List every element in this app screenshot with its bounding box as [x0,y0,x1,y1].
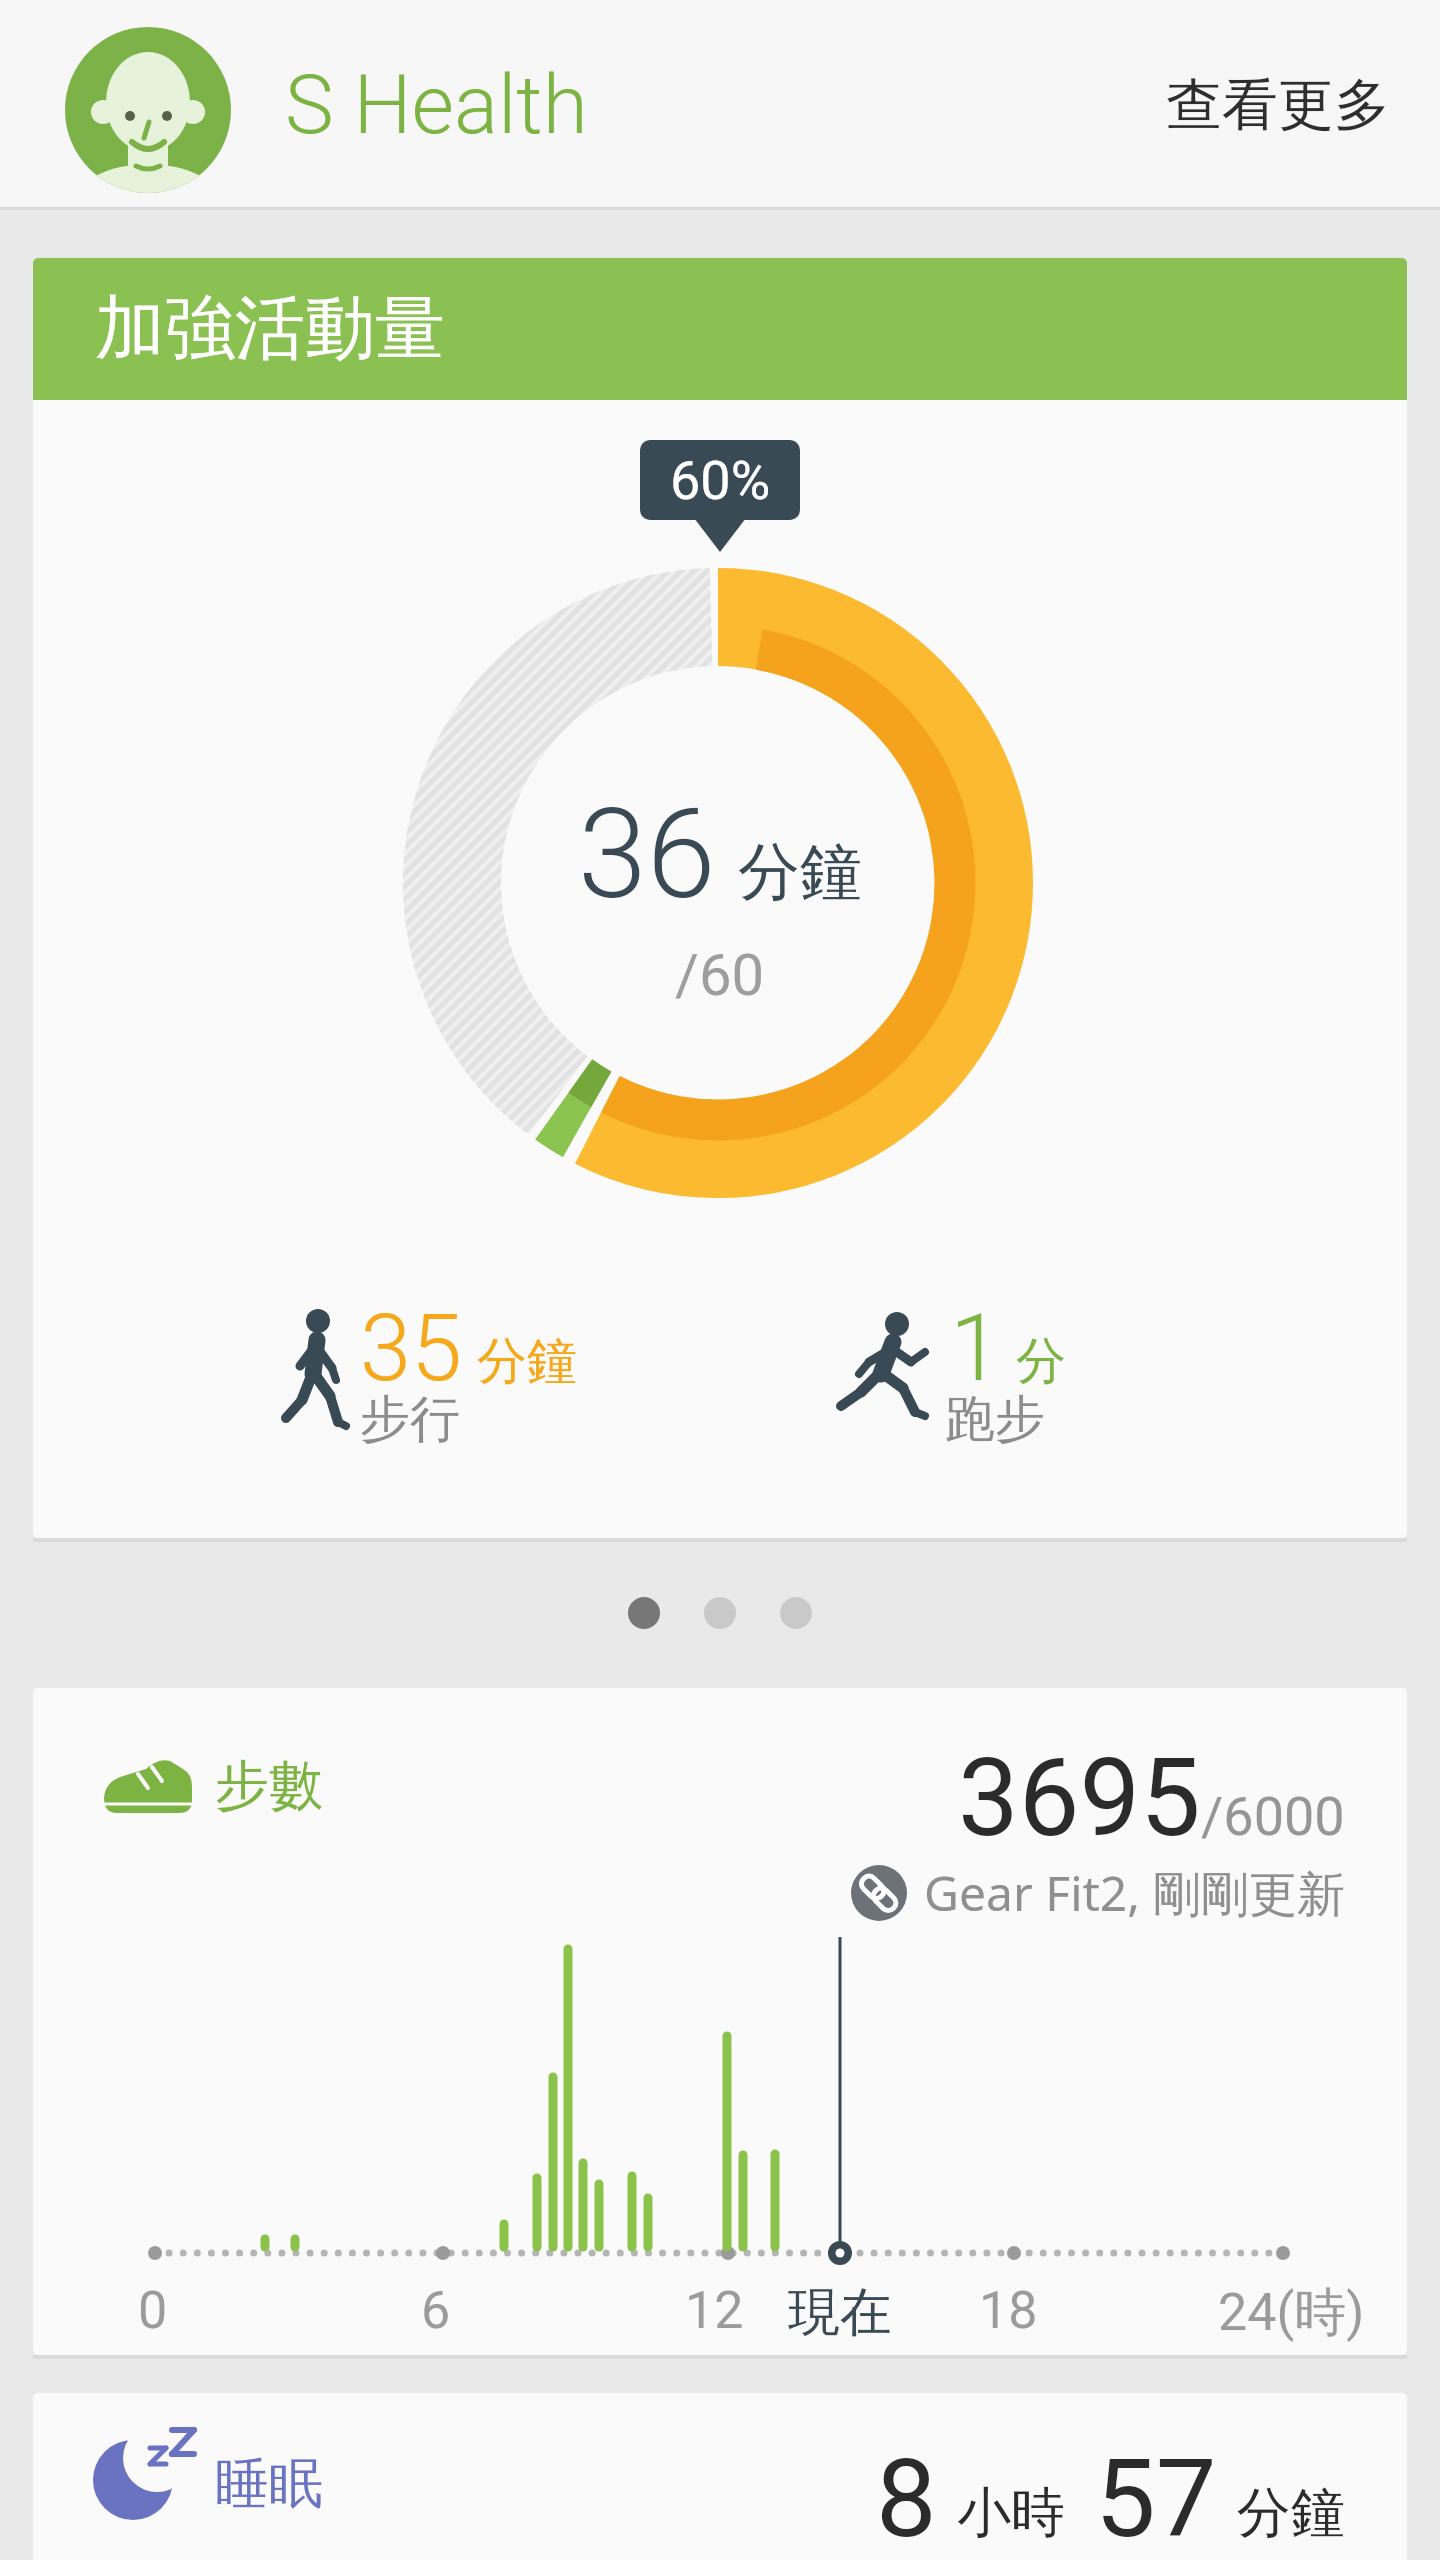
staticText: 35 [360,1295,463,1403]
staticText: Gear Fit2, 剛剛更新 [924,1860,1345,1926]
staticText: 57 [1095,2436,1217,2560]
staticText: 分 [1016,1330,1066,1393]
button[interactable] [33,1688,1407,2355]
staticText: 60% [670,449,771,512]
button[interactable] [60,25,236,195]
staticText: 18 [979,2280,1038,2341]
staticText: 3695 [958,1735,1201,1862]
staticText: 分鐘 [1237,2479,1345,2547]
staticText: 步行 [360,1388,460,1451]
staticText: 查看更多 [1166,70,1390,141]
staticText: 加強活動量 [95,285,445,373]
staticText: S Health [285,57,588,153]
staticText: 分鐘 [738,833,862,911]
staticText: 步數 [215,1752,323,1820]
button[interactable]: 加強活動量 [33,258,1407,1538]
staticText: 0 [138,2280,168,2341]
staticText: 36 [578,782,716,927]
button[interactable] [33,2393,1407,2560]
staticText: 跑步 [945,1388,1045,1451]
staticText: 24(時) [1218,2280,1365,2346]
staticText: /60 [675,941,765,1009]
staticText: 12 [685,2280,744,2341]
button[interactable]: Gear Fit2, 剛剛更新 [850,1860,1345,1926]
staticText: 現在 [788,2280,892,2346]
staticText: 睡眠 [215,2450,323,2518]
staticText: /6000 [1201,1785,1345,1848]
staticText: 8 [876,2436,937,2560]
staticText: 小時 [957,2479,1065,2547]
staticText: 分鐘 [477,1330,577,1393]
staticText: 1 [950,1295,1002,1403]
staticText: 6 [421,2280,451,2341]
button[interactable]: 查看更多 [1166,0,1440,210]
